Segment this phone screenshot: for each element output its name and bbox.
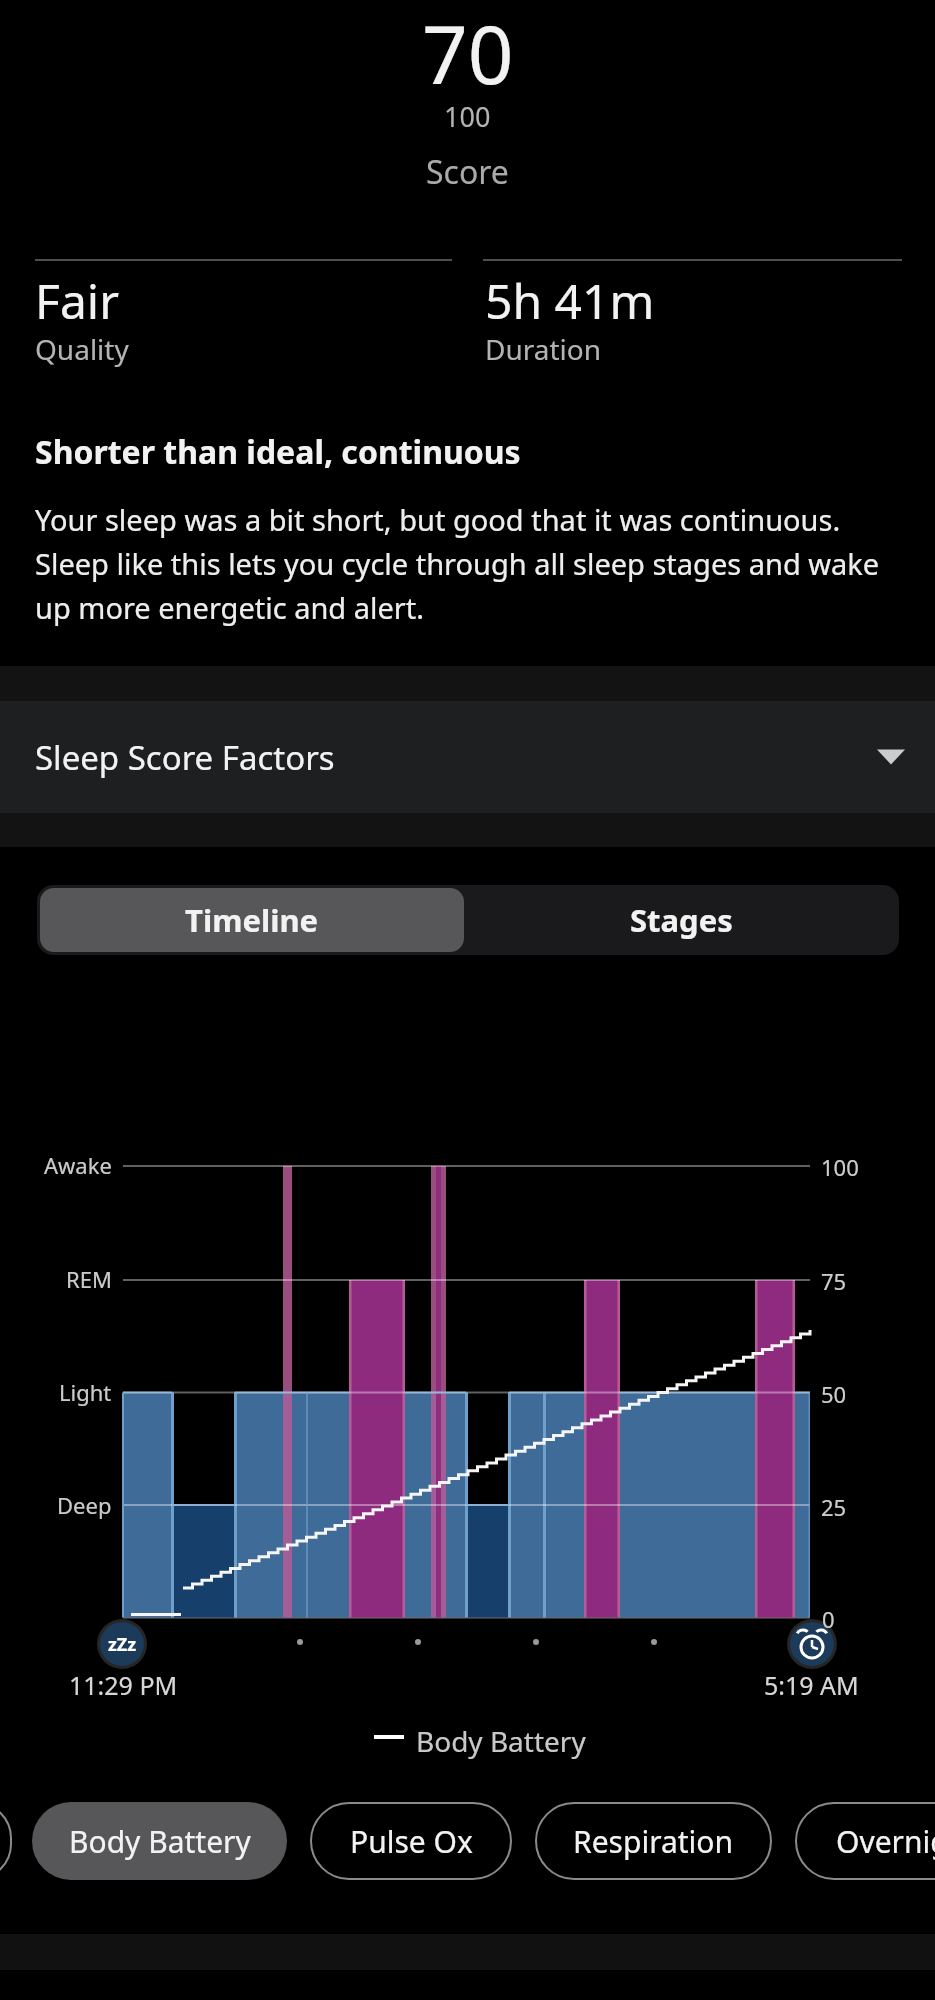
- staticText: Awake: [44, 1150, 112, 1180]
- staticText: 50: [821, 1379, 847, 1409]
- staticText: 70: [422, 0, 514, 107]
- staticText: zZz: [108, 1632, 137, 1657]
- staticText: 5h 41m: [485, 268, 655, 333]
- staticText: Timeline: [185, 899, 319, 941]
- button[interactable]: Overnight: [795, 1802, 935, 1880]
- staticText: 5:19 AM: [764, 1668, 859, 1702]
- staticText: 100: [821, 1152, 859, 1182]
- staticText: Your sleep was a bit short, but good tha…: [35, 500, 880, 627]
- staticText: Body Battery: [416, 1722, 586, 1760]
- button[interactable]: Timeline: [40, 888, 464, 952]
- button[interactable]: Sleep Score Factors: [0, 701, 935, 813]
- staticText: Sleep Score Factors: [35, 735, 335, 780]
- staticText: Deep: [57, 1490, 112, 1520]
- staticText: Respiration: [573, 1821, 734, 1862]
- button[interactable]: [0, 1802, 12, 1880]
- button[interactable]: Pulse Ox: [310, 1802, 512, 1880]
- button[interactable]: Stages: [464, 888, 899, 952]
- staticText: 0: [822, 1604, 835, 1634]
- staticText: 11:29 PM: [69, 1668, 178, 1702]
- staticText: Light: [59, 1377, 112, 1407]
- staticText: Fair: [35, 268, 120, 333]
- button[interactable]: Respiration: [535, 1802, 772, 1880]
- staticText: REM: [66, 1264, 112, 1294]
- staticText: Score: [426, 150, 509, 194]
- button[interactable]: Body Battery: [32, 1802, 287, 1880]
- staticText: 100: [444, 98, 491, 135]
- staticText: Overnight: [836, 1821, 935, 1862]
- staticText: Shorter than ideal, continuous: [35, 430, 521, 474]
- staticText: Duration: [485, 330, 602, 368]
- staticText: Stages: [630, 899, 733, 941]
- staticText: Quality: [35, 330, 129, 368]
- staticText: Pulse Ox: [350, 1821, 473, 1862]
- staticText: 75: [821, 1266, 847, 1296]
- staticText: 25: [821, 1492, 847, 1522]
- staticText: Body Battery: [69, 1821, 251, 1862]
